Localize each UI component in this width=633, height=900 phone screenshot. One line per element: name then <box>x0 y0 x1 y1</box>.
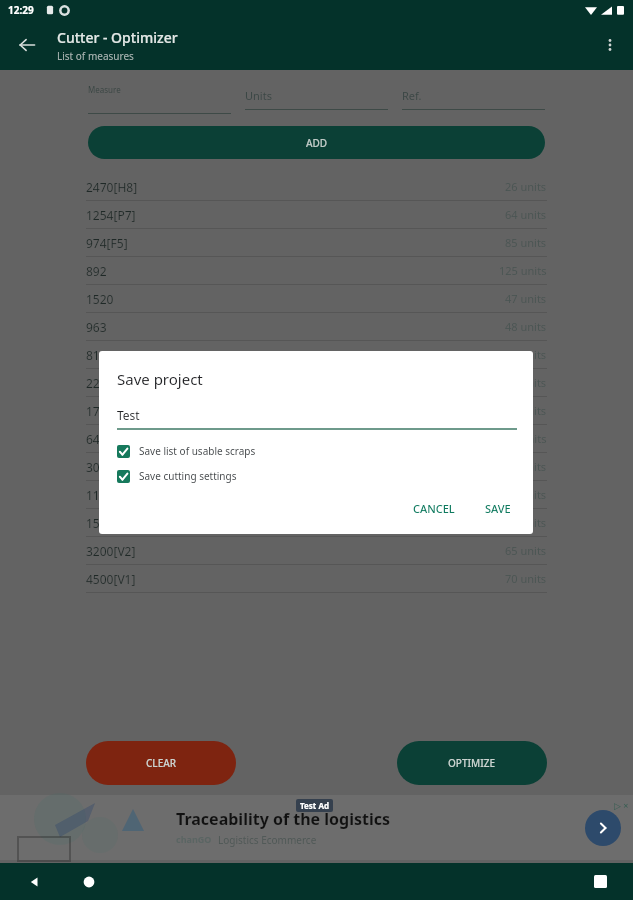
staticText: ▷ × <box>614 799 629 811</box>
button[interactable]: SAVE <box>479 497 517 520</box>
button[interactable]: 1120 <box>86 481 547 508</box>
button[interactable]: 1500[V3] <box>86 509 547 536</box>
button[interactable]: 1254[P7] <box>86 201 547 228</box>
staticText: 3000[C4] <box>86 459 136 475</box>
staticText: 64 units <box>505 207 547 222</box>
staticText: Cutter - Optimizer <box>57 28 178 47</box>
button[interactable]: 810 <box>86 341 547 368</box>
button[interactable]: 892 <box>86 257 547 284</box>
staticText: 22 units <box>505 459 547 474</box>
button[interactable]: Home <box>82 875 96 889</box>
staticText: Ref. <box>402 88 422 103</box>
button[interactable]: 974[F5] <box>86 229 547 256</box>
staticText: 3200[V2] <box>86 543 136 559</box>
button[interactable]: 640 <box>86 425 547 452</box>
staticText: Measure <box>88 84 121 95</box>
staticText: chanGO <box>176 833 212 845</box>
staticText: Units <box>245 88 272 103</box>
staticText: 892 <box>86 263 107 279</box>
button[interactable]: More options <box>593 28 627 62</box>
staticText: 640 <box>86 431 107 447</box>
button[interactable]: Back <box>10 28 44 62</box>
button[interactable]: Recents <box>594 875 607 888</box>
button[interactable]: 3000[C4] <box>86 453 547 480</box>
staticText: Save cutting settings <box>139 469 237 483</box>
staticText: 963 <box>86 319 107 335</box>
button[interactable]: Save cutting settings <box>117 469 517 483</box>
staticText: 47 units <box>505 291 547 306</box>
staticText: 110 units <box>499 431 547 446</box>
button[interactable]: Open ad <box>585 810 621 846</box>
staticText: 12:29 <box>8 3 34 17</box>
staticText: 1120 <box>86 487 114 503</box>
staticText: CLEAR <box>146 756 177 770</box>
staticText: 125 units <box>499 263 547 278</box>
staticText: List of measures <box>57 49 134 63</box>
button[interactable]: CANCEL <box>407 497 461 520</box>
staticText: 2200[A1] <box>86 375 136 391</box>
staticText: 38 units <box>505 487 547 502</box>
staticText: 70 units <box>505 571 547 586</box>
staticText: CANCEL <box>413 501 455 516</box>
staticText: 70 units <box>505 515 547 530</box>
button[interactable]: Ref. <box>402 84 545 110</box>
button[interactable]: 2200[A1] <box>86 369 547 396</box>
button[interactable]: 3200[V2] <box>86 537 547 564</box>
button[interactable]: Measure <box>88 84 231 114</box>
staticText: 55 units <box>505 403 547 418</box>
button[interactable]: Units <box>245 84 388 110</box>
staticText: 85 units <box>505 235 547 250</box>
staticText: 4500[V1] <box>86 571 136 587</box>
staticText: SAVE <box>485 501 511 516</box>
staticText: 30 units <box>505 375 547 390</box>
staticText: 2470[H8] <box>86 179 138 195</box>
button[interactable]: 2470[H8] <box>86 173 547 200</box>
staticText: 974[F5] <box>86 235 128 251</box>
staticText: 26 units <box>505 179 547 194</box>
staticText: Test Ad <box>300 800 329 811</box>
staticText: OPTIMIZE <box>448 756 496 770</box>
staticText: Test <box>117 407 140 423</box>
staticText: Logistics Ecommerce <box>218 833 317 847</box>
staticText: 90 units <box>505 347 547 362</box>
button[interactable]: Test <box>117 407 517 430</box>
staticText: 65 units <box>505 543 547 558</box>
staticText: 48 units <box>505 319 547 334</box>
staticText: Traceability of the logistics <box>176 808 391 830</box>
button[interactable]: 4500[V1] <box>86 565 547 592</box>
button[interactable]: 963 <box>86 313 547 340</box>
staticText: 810 <box>86 347 107 363</box>
button[interactable]: CLEAR <box>86 741 236 785</box>
staticText: Save list of usable scraps <box>139 444 256 458</box>
staticText: 1520 <box>86 291 114 307</box>
staticText: 1500[V3] <box>86 515 136 531</box>
staticText: 1750[B2] <box>86 403 137 419</box>
button[interactable]: OPTIMIZE <box>397 741 547 785</box>
button[interactable]: 1750[B2] <box>86 397 547 424</box>
button[interactable]: 1520 <box>86 285 547 312</box>
button[interactable]: ADD <box>88 126 545 159</box>
staticText: 1254[P7] <box>86 207 136 223</box>
button[interactable]: Save list of usable scraps <box>117 444 517 458</box>
staticText: Save project <box>117 369 203 389</box>
staticText: ADD <box>306 136 328 150</box>
button[interactable]: Back <box>26 874 42 890</box>
